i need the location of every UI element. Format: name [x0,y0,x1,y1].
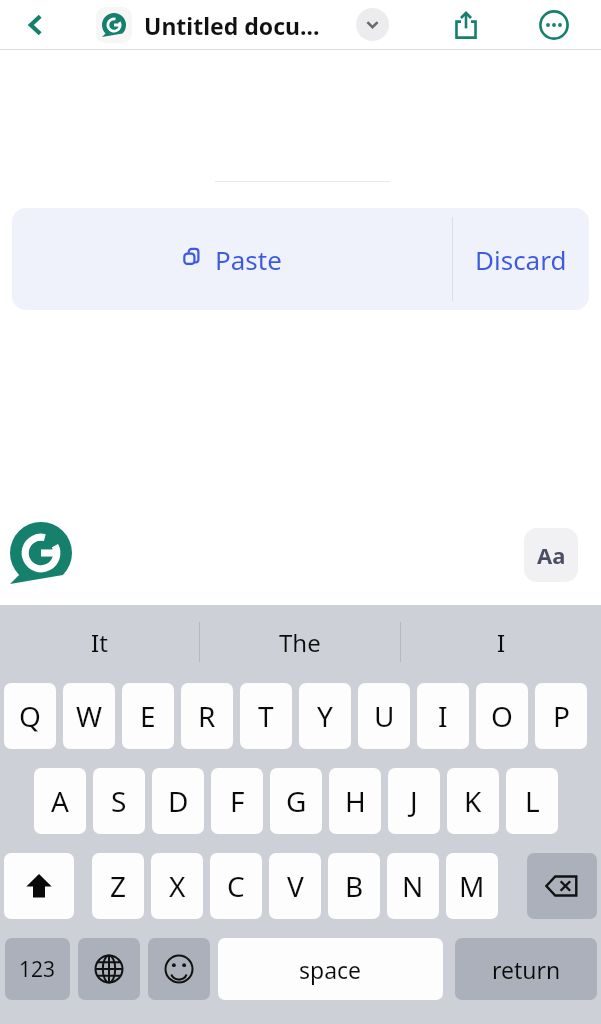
button[interactable]: Text formatting [524,528,578,582]
staticText: J [410,782,418,820]
staticText: Z [110,867,127,905]
button[interactable]: Back [14,3,58,47]
button[interactable]: H [329,768,381,834]
button[interactable]: Emoji [148,938,210,1000]
button[interactable]: Document menu [356,8,389,41]
button[interactable]: U [358,683,410,749]
button[interactable]: M [446,853,498,919]
button[interactable]: Share [443,2,489,48]
button[interactable]: T [240,683,292,749]
staticText: G [286,782,307,820]
button[interactable]: X [151,853,203,919]
staticText: V [287,867,304,905]
staticText: D [168,782,189,820]
staticText: Y [317,697,333,735]
button[interactable]: Backspace [527,853,597,919]
staticText: R [198,697,216,735]
button[interactable]: Discard [453,208,589,310]
staticText: return [492,954,561,985]
button[interactable]: Q [4,683,56,749]
staticText: Aa [537,540,566,570]
button[interactable]: I [417,683,469,749]
staticText: U [374,697,395,735]
button[interactable]: O [476,683,528,749]
staticText: Paste [215,242,282,277]
staticText: L [525,782,540,820]
staticText: P [553,697,570,735]
button[interactable]: S [93,768,145,834]
staticText: C [227,867,245,905]
staticText: I [438,697,448,735]
button[interactable]: C [210,853,262,919]
button[interactable]: I [401,605,601,679]
staticText: E [140,697,156,735]
staticText: space [299,954,362,985]
button[interactable]: It [0,605,199,679]
button[interactable]: J [388,768,440,834]
staticText: T [258,697,274,735]
button[interactable]: R [181,683,233,749]
button[interactable]: 123 [5,938,70,1000]
staticText: Untitled docu... [144,10,320,41]
button[interactable]: Z [92,853,144,919]
staticText: O [491,697,513,735]
button[interactable]: V [269,853,321,919]
staticText: H [345,782,366,820]
button[interactable]: More options [531,2,577,48]
button[interactable]: Paste [12,208,452,310]
button[interactable]: Grammarly assistant [6,518,76,588]
button[interactable]: K [447,768,499,834]
button[interactable]: Shift [4,853,74,919]
button[interactable]: Y [299,683,351,749]
staticText: K [464,782,482,820]
button[interactable]: F [211,768,263,834]
staticText: Discard [475,242,567,277]
button[interactable]: return [455,938,597,1000]
staticText: It [91,626,108,659]
button[interactable]: The [200,605,400,679]
button[interactable]: L [506,768,558,834]
staticText: F [230,782,245,820]
staticText: The [279,626,321,659]
button[interactable]: N [387,853,439,919]
button[interactable]: P [535,683,587,749]
button[interactable]: Change language [78,938,140,1000]
button[interactable]: B [328,853,380,919]
staticText: B [345,867,364,905]
staticText: X [169,867,186,905]
button[interactable]: E [122,683,174,749]
button[interactable]: G [270,768,322,834]
button[interactable]: Untitled docu... [144,0,349,50]
staticText: W [76,697,103,735]
button[interactable]: space [218,938,443,1000]
staticText: N [402,867,424,905]
button[interactable]: D [152,768,204,834]
staticText: A [51,782,69,820]
button[interactable]: A [34,768,86,834]
staticText: 123 [19,955,56,984]
staticText: M [459,867,485,905]
staticText: S [111,782,127,820]
staticText: Q [19,697,41,735]
button[interactable]: W [63,683,115,749]
staticText: I [497,626,506,659]
